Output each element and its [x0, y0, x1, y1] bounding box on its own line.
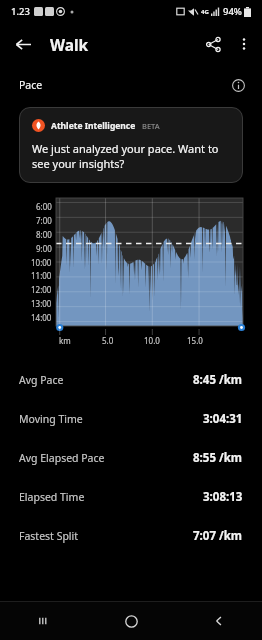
staticText: 8:00	[36, 229, 52, 240]
button[interactable]: Avg Elapsed Pace	[0, 438, 262, 477]
button[interactable]: Avg Pace	[0, 360, 262, 399]
staticText: Moving Time	[19, 412, 83, 426]
staticText: Avg Elapsed Pace	[19, 451, 105, 465]
staticText: Avg Pace	[19, 373, 64, 387]
staticText: 8:55 /km	[193, 450, 243, 466]
staticText: 12:00	[31, 284, 52, 295]
staticText: 11:00	[31, 270, 52, 281]
staticText: We just analyzed your pace. Want to see …	[32, 141, 219, 171]
staticText: 14:00	[31, 312, 52, 323]
button[interactable]: Home	[88, 602, 175, 640]
staticText: BETA	[142, 121, 160, 131]
staticText: 9:00	[36, 243, 52, 254]
button[interactable]: Back	[175, 602, 262, 640]
button[interactable]: More options	[229, 29, 259, 59]
button[interactable]: Athlete Intelligence	[19, 107, 243, 183]
staticText: 3:04:31	[203, 411, 243, 427]
button[interactable]: Recent apps	[0, 602, 88, 640]
staticText: 6:00	[36, 201, 52, 212]
staticText: Fastest Split	[19, 529, 79, 543]
staticText: 15.0	[187, 335, 203, 346]
staticText: 1.23	[11, 5, 30, 18]
staticText: 7:00	[36, 215, 52, 226]
staticText: Pace	[19, 78, 43, 92]
button[interactable]: Share	[198, 29, 228, 59]
staticText: 3:08:13	[203, 489, 243, 505]
staticText: 10.0	[144, 335, 160, 346]
staticText: Elapsed Time	[19, 490, 85, 504]
button[interactable]: Elapsed Time	[0, 477, 262, 516]
staticText: 5.0	[102, 335, 114, 346]
button[interactable]: Back	[7, 28, 39, 60]
staticText: km	[59, 335, 71, 346]
button[interactable]: Info	[228, 75, 248, 95]
staticText: Athlete Intelligence	[51, 120, 136, 132]
button[interactable]: Moving Time	[0, 399, 262, 438]
staticText: 10:00	[31, 257, 52, 268]
staticText: 94%	[223, 5, 242, 18]
button[interactable]: Fastest Split	[0, 516, 262, 555]
staticText: 13:00	[31, 298, 52, 309]
staticText: 8:45 /km	[193, 372, 243, 388]
staticText: Walk	[50, 34, 89, 55]
staticText: 4G	[201, 8, 209, 16]
staticText: 7:07 /km	[193, 528, 243, 544]
